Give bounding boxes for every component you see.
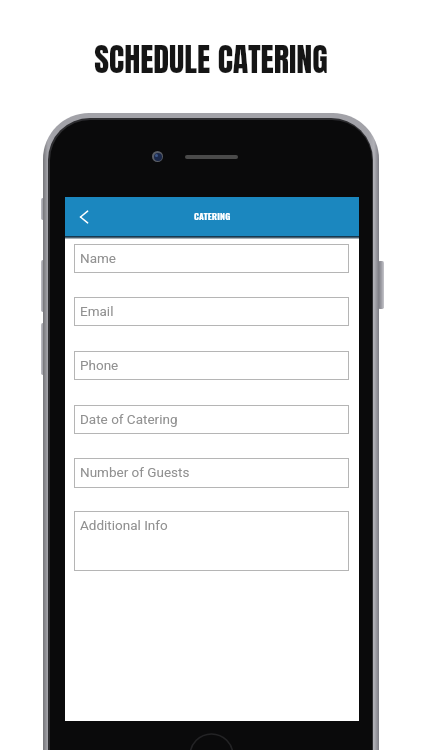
staticText: Name <box>80 250 116 266</box>
staticText: Phone <box>80 357 119 373</box>
button[interactable]: Phone <box>74 351 349 380</box>
button[interactable]: Back <box>66 199 102 235</box>
staticText: Number of Guests <box>80 464 190 480</box>
button[interactable]: Number of Guests <box>74 458 349 488</box>
button[interactable]: Additional Info <box>74 511 349 571</box>
button[interactable]: Email <box>74 297 349 326</box>
button[interactable]: Date of Catering <box>74 405 349 434</box>
staticText: SCHEDULE CATERING <box>0 35 422 83</box>
staticText: CATERING <box>194 210 231 223</box>
staticText: Additional Info <box>80 517 168 533</box>
staticText: Email <box>80 303 114 319</box>
button[interactable]: Name <box>74 244 349 273</box>
staticText: Date of Catering <box>80 411 178 427</box>
